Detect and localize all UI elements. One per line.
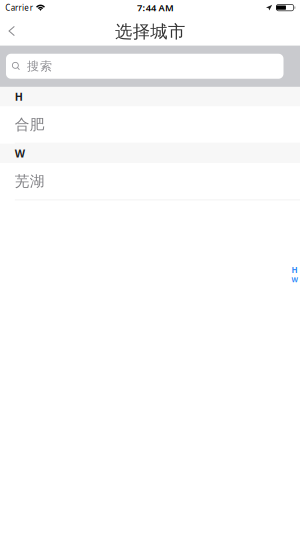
staticText: 搜索 (27, 59, 52, 74)
staticText: W (291, 275, 297, 284)
staticText: H (15, 90, 23, 104)
button[interactable]: 芜湖 (0, 163, 300, 200)
staticText: W (15, 146, 25, 160)
button[interactable]: H (289, 265, 300, 275)
button[interactable]: 搜索 (6, 54, 283, 79)
staticText: 选择城市 (115, 21, 185, 42)
staticText: 7:44 AM (137, 1, 174, 14)
staticText: Carrier (5, 2, 33, 13)
staticText: 合肥 (15, 116, 45, 134)
button[interactable]: Back (0, 15, 23, 46)
staticText: H (291, 265, 297, 275)
button[interactable]: W (289, 275, 300, 285)
staticText: 芜湖 (15, 172, 45, 190)
button[interactable]: 合肥 (0, 106, 300, 144)
